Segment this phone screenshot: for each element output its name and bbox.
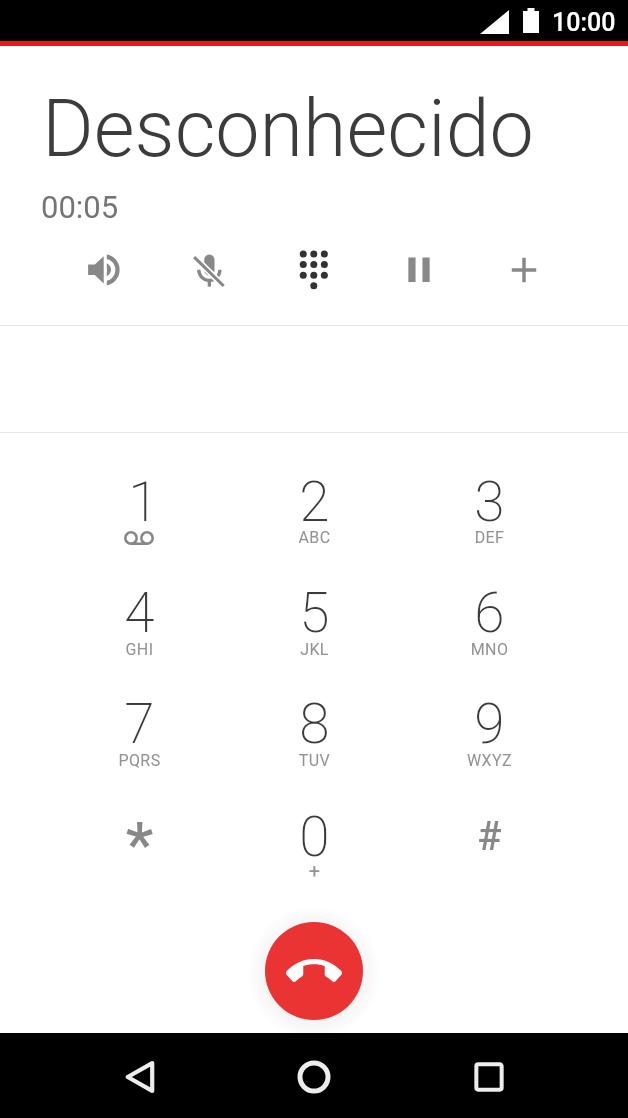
- button[interactable]: End call: [265, 922, 363, 1020]
- staticText: ABC: [227, 528, 402, 547]
- staticText: TUV: [227, 751, 402, 770]
- staticText: MNO: [402, 640, 577, 659]
- staticText: 3: [402, 470, 577, 534]
- staticText: 4: [52, 581, 227, 645]
- staticText: +: [227, 859, 402, 882]
- button[interactable]: #: [402, 788, 577, 899]
- staticText: PQRS: [52, 751, 227, 770]
- staticText: WXYZ: [402, 751, 577, 770]
- button[interactable]: 6: [402, 566, 577, 677]
- staticText: 7: [52, 692, 227, 756]
- button[interactable]: Speaker: [52, 240, 156, 299]
- button[interactable]: 0: [227, 788, 402, 899]
- staticText: 6: [402, 581, 577, 645]
- button[interactable]: 4: [52, 566, 227, 677]
- button[interactable]: Add call: [471, 240, 576, 299]
- button[interactable]: 3: [402, 455, 577, 566]
- button[interactable]: 1: [52, 455, 227, 566]
- button[interactable]: Hold: [366, 240, 471, 299]
- staticText: #: [402, 813, 577, 860]
- button[interactable]: Home: [272, 1033, 356, 1118]
- button[interactable]: Mute: [156, 240, 261, 299]
- button[interactable]: *: [52, 788, 227, 899]
- button[interactable]: 7: [52, 677, 227, 788]
- staticText: *: [52, 808, 227, 881]
- button[interactable]: Recents: [447, 1033, 531, 1118]
- staticText: GHI: [52, 640, 227, 659]
- staticText: 0: [227, 805, 402, 869]
- staticText: 9: [402, 692, 577, 756]
- staticText: 1: [56, 470, 231, 534]
- button[interactable]: Back: [98, 1033, 182, 1118]
- button[interactable]: Dialpad: [261, 240, 366, 299]
- staticText: DEF: [402, 528, 577, 547]
- button[interactable]: 5: [227, 566, 402, 677]
- staticText: 2: [227, 470, 402, 534]
- staticText: 00:05: [41, 189, 119, 225]
- staticText: Desconhecido: [42, 83, 534, 176]
- button[interactable]: 9: [402, 677, 577, 788]
- staticText: JKL: [227, 640, 402, 659]
- staticText: 10:00: [552, 8, 616, 37]
- button[interactable]: 2: [227, 455, 402, 566]
- staticText: 8: [227, 692, 402, 756]
- staticText: 5: [227, 581, 402, 645]
- button[interactable]: 8: [227, 677, 402, 788]
